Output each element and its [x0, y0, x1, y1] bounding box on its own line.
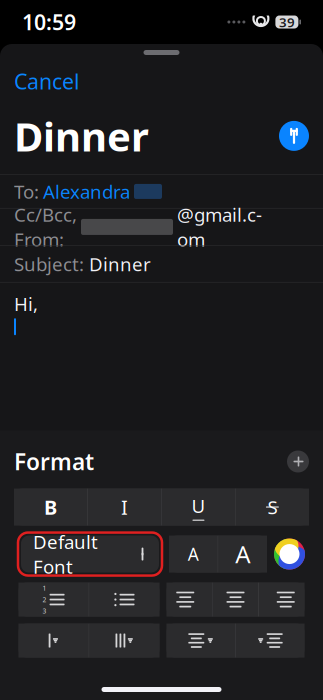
staticText: A: [235, 538, 250, 570]
staticText: S: [267, 495, 277, 519]
staticText: Dinner: [89, 252, 151, 276]
button[interactable]: [213, 582, 258, 616]
staticText: To:: [14, 179, 39, 204]
button[interactable]: [259, 582, 304, 616]
button[interactable]: [166, 623, 235, 657]
staticText: Cc/Bcc, From:: [14, 202, 77, 252]
staticText: A: [188, 542, 199, 565]
button[interactable]: Close Format: [287, 450, 309, 472]
staticText: Cancel: [14, 67, 80, 95]
staticText: 1: [43, 584, 47, 593]
button[interactable]: [18, 623, 89, 657]
button[interactable]: A: [169, 535, 218, 572]
staticText: I: [121, 494, 128, 520]
button[interactable]: Default Font: [18, 532, 162, 575]
staticText: 39: [279, 13, 295, 31]
button[interactable]: Text color: [274, 538, 305, 569]
staticText: 10:59: [22, 8, 76, 36]
button[interactable]: Cancel: [14, 63, 80, 99]
staticText: 3: [43, 607, 47, 615]
button[interactable]: [166, 582, 212, 616]
staticText: U: [191, 493, 205, 518]
staticText: Hi,: [14, 291, 38, 316]
button[interactable]: U: [162, 488, 235, 525]
staticText: Dinner: [14, 109, 149, 162]
button[interactable]: Send: [279, 121, 309, 151]
button[interactable]: [89, 582, 160, 616]
button[interactable]: To:: [0, 175, 323, 208]
staticText: Format: [14, 446, 94, 476]
button[interactable]: Cc/Bcc, From:: [0, 208, 323, 245]
staticText: @gmail.com: [177, 202, 262, 252]
staticText: B: [44, 494, 57, 520]
button[interactable]: Subject:: [0, 246, 323, 282]
button[interactable]: S: [236, 488, 309, 525]
staticText: Alexandra: [43, 179, 130, 204]
staticText: 2: [43, 595, 47, 604]
staticText: Subject:: [14, 252, 84, 276]
button[interactable]: [89, 623, 160, 657]
button[interactable]: [236, 623, 305, 657]
staticText: Default Font: [33, 529, 98, 579]
button[interactable]: 1: [18, 582, 89, 616]
button[interactable]: I: [88, 488, 161, 525]
button[interactable]: A: [218, 535, 267, 572]
button[interactable]: B: [14, 488, 87, 525]
